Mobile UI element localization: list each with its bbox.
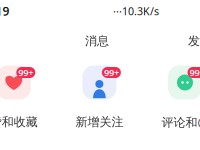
staticText: 评论和@ (161, 114, 200, 130)
button[interactable] (0, 65, 31, 99)
staticText: 发 (188, 34, 200, 48)
staticText: 消息 (85, 34, 109, 48)
button[interactable] (82, 65, 116, 99)
staticText: 新增关注 (75, 115, 123, 129)
staticText: 99+ (104, 66, 119, 79)
staticText: 99+ (189, 66, 200, 79)
button[interactable]: 发 (188, 34, 200, 48)
staticText: ···10.3K/s (113, 4, 159, 18)
staticText: 19 (0, 3, 9, 19)
button[interactable]: 消息 (85, 34, 109, 48)
button[interactable] (168, 65, 200, 99)
staticText: 99+ (18, 66, 33, 79)
staticText: 赞和收藏 (0, 115, 38, 129)
